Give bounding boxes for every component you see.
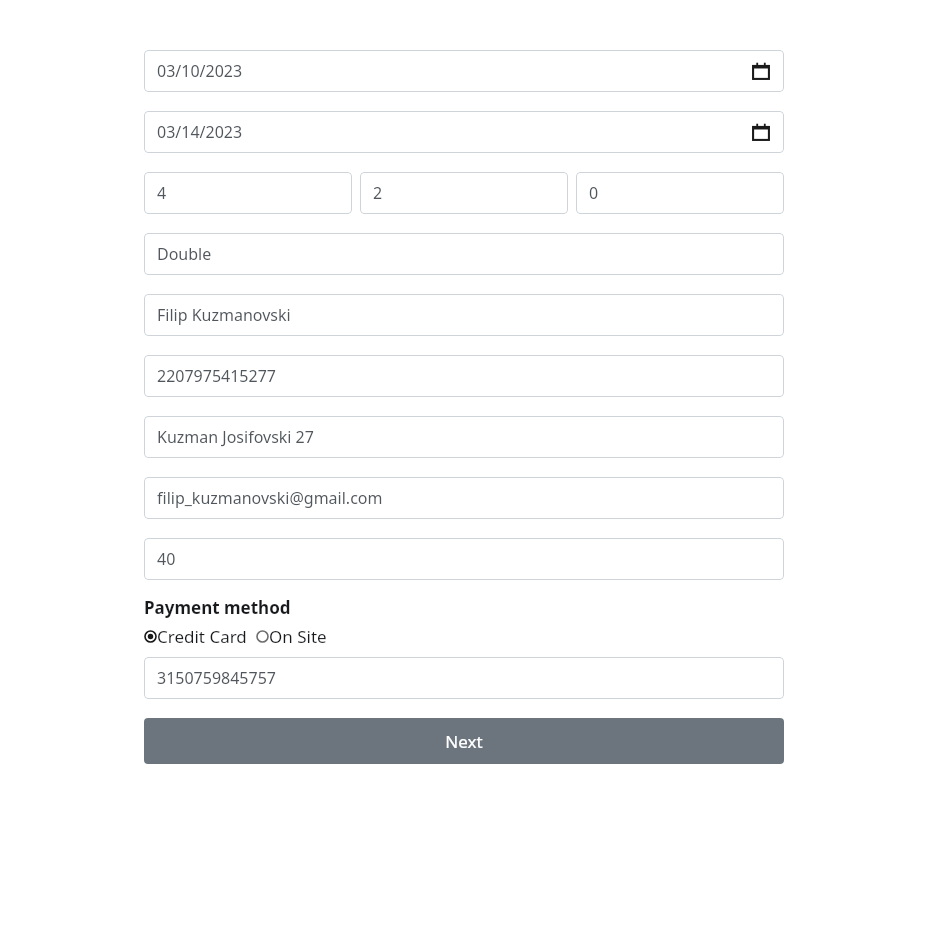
button[interactable]: 2 — [360, 172, 568, 214]
staticText: Filip Kuzmanovski — [157, 304, 291, 326]
button[interactable]: 4 — [144, 172, 352, 214]
staticText: 0 — [589, 182, 599, 204]
staticText: Next — [445, 730, 483, 753]
button[interactable]: Kuzman Josifovski 27 — [144, 416, 784, 458]
staticText: 3150759845757 — [157, 667, 276, 689]
button[interactable]: Next — [144, 718, 784, 764]
staticText: Payment method — [144, 596, 291, 619]
button[interactable]: Credit Card — [144, 625, 247, 648]
button[interactable]: filip_kuzmanovski@gmail.com — [144, 477, 784, 519]
staticText: filip_kuzmanovski@gmail.com — [157, 487, 383, 509]
other: Pick date — [752, 62, 770, 80]
button[interactable]: 2207975415277 — [144, 355, 784, 397]
staticText: 40 — [157, 548, 176, 570]
staticText: Double — [157, 243, 212, 265]
staticText: 03/10/2023 — [157, 60, 243, 82]
staticText: On Site — [269, 625, 327, 648]
other: Pick date — [752, 123, 770, 141]
staticText: 2 — [373, 182, 383, 204]
button[interactable]: 0 — [576, 172, 784, 214]
button[interactable]: 03/14/2023 — [144, 111, 784, 153]
staticText: 4 — [157, 182, 167, 204]
staticText: Kuzman Josifovski 27 — [157, 426, 314, 448]
button[interactable]: Double — [144, 233, 784, 275]
button[interactable]: 3150759845757 — [144, 657, 784, 699]
staticText: 03/14/2023 — [157, 121, 243, 143]
staticText: Credit Card — [157, 625, 247, 648]
button[interactable]: Filip Kuzmanovski — [144, 294, 784, 336]
staticText: 2207975415277 — [157, 365, 276, 387]
button[interactable]: On Site — [256, 625, 327, 648]
button[interactable]: 03/10/2023 — [144, 50, 784, 92]
button[interactable]: 40 — [144, 538, 784, 580]
